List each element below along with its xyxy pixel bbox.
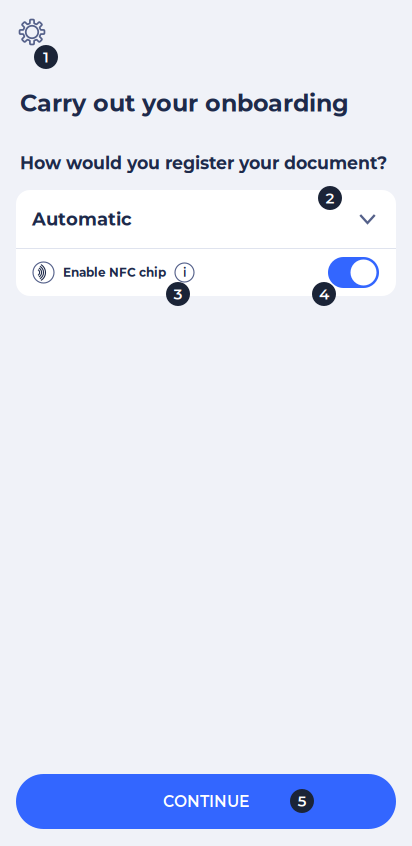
button[interactable]: More information about the NFC chip <box>175 263 194 282</box>
button[interactable]: Settings <box>19 19 45 45</box>
button[interactable]: Enable NFC chip <box>328 257 379 288</box>
staticText: Automatic <box>32 208 132 230</box>
staticText: 4 <box>319 285 329 303</box>
staticText: Carry out your onboarding <box>20 88 349 117</box>
staticText: 5 <box>297 792 306 810</box>
staticText: CONTINUE <box>163 792 249 811</box>
staticText: i <box>183 265 186 280</box>
staticText: Enable NFC chip <box>63 265 166 280</box>
staticText: 1 <box>43 48 49 66</box>
button[interactable]: CONTINUE <box>16 774 396 829</box>
staticText: 2 <box>325 189 334 207</box>
button[interactable]: Automatic <box>16 190 396 248</box>
staticText: How would you register your document? <box>20 152 387 173</box>
staticText: 3 <box>173 285 182 303</box>
